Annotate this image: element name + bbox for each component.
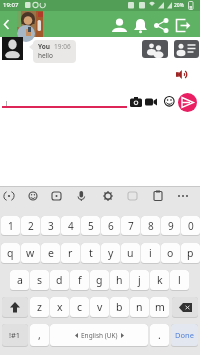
button[interactable]: y bbox=[101, 243, 120, 264]
button[interactable] bbox=[2, 297, 28, 318]
button[interactable] bbox=[174, 40, 199, 58]
button[interactable] bbox=[3, 19, 11, 30]
button[interactable]: a bbox=[10, 270, 29, 291]
staticText: m bbox=[155, 300, 165, 314]
button[interactable] bbox=[178, 93, 197, 112]
button[interactable]: 2 bbox=[21, 216, 40, 236]
staticText: k bbox=[157, 273, 163, 287]
button[interactable]: 5 bbox=[81, 216, 100, 236]
staticText: q bbox=[7, 246, 14, 260]
button[interactable] bbox=[130, 97, 142, 107]
staticText: x bbox=[57, 300, 63, 314]
staticText: 6 bbox=[108, 219, 114, 233]
button[interactable] bbox=[145, 98, 157, 106]
button[interactable]: n bbox=[130, 297, 149, 318]
button[interactable]: m bbox=[150, 297, 169, 318]
staticText: . bbox=[158, 328, 161, 342]
staticText: n bbox=[136, 300, 143, 314]
button[interactable]: t bbox=[81, 243, 100, 264]
staticText: g bbox=[96, 273, 103, 287]
staticText: 8 bbox=[148, 219, 154, 233]
staticText: hello bbox=[38, 51, 53, 60]
staticText: 1 bbox=[8, 219, 14, 233]
button[interactable]: k bbox=[150, 270, 169, 291]
button[interactable] bbox=[108, 18, 130, 35]
staticText: 5 bbox=[88, 219, 94, 233]
button[interactable]: 6 bbox=[101, 216, 120, 236]
button[interactable]: . bbox=[150, 324, 169, 347]
button[interactable]: g bbox=[90, 270, 109, 291]
staticText: h bbox=[116, 273, 123, 287]
button[interactable]: s bbox=[30, 270, 49, 291]
button[interactable]: 8 bbox=[141, 216, 160, 236]
button[interactable]: , bbox=[30, 324, 49, 347]
button[interactable]: You bbox=[33, 40, 76, 63]
button[interactable]: w bbox=[21, 243, 40, 264]
button[interactable]: b bbox=[110, 297, 129, 318]
button[interactable]: 7 bbox=[121, 216, 140, 236]
staticText: d bbox=[56, 273, 63, 287]
button[interactable]: !#1 bbox=[2, 324, 28, 347]
button[interactable] bbox=[17, 11, 43, 37]
button[interactable] bbox=[151, 18, 172, 35]
button[interactable] bbox=[164, 96, 175, 107]
button[interactable]: q bbox=[1, 243, 20, 264]
button[interactable]: z bbox=[30, 297, 49, 318]
staticText: j bbox=[138, 273, 141, 287]
button[interactable]: f bbox=[70, 270, 89, 291]
staticText: i bbox=[149, 246, 152, 260]
button[interactable]: h bbox=[110, 270, 129, 291]
staticText: o bbox=[167, 246, 174, 260]
staticText: 3 bbox=[48, 219, 54, 233]
button[interactable]: x bbox=[50, 297, 69, 318]
button[interactable]: p bbox=[181, 243, 200, 264]
button[interactable]: u bbox=[121, 243, 140, 264]
button[interactable] bbox=[172, 18, 196, 35]
staticText: z bbox=[37, 300, 42, 314]
button[interactable] bbox=[176, 69, 188, 80]
button[interactable]: e bbox=[41, 243, 60, 264]
staticText: p bbox=[187, 246, 194, 260]
button[interactable] bbox=[2, 37, 23, 60]
button[interactable]: l bbox=[170, 270, 189, 291]
staticText: 4 bbox=[68, 219, 74, 233]
button[interactable]: English (UK) bbox=[50, 324, 148, 347]
staticText: c bbox=[77, 300, 83, 314]
button[interactable]: Done bbox=[171, 324, 198, 347]
staticText: u bbox=[127, 246, 134, 260]
button[interactable]: c bbox=[70, 297, 89, 318]
staticText: b bbox=[116, 300, 123, 314]
staticText: 9 bbox=[168, 219, 174, 233]
button[interactable]: 1 bbox=[1, 216, 20, 236]
staticText: w bbox=[26, 246, 35, 260]
button[interactable]: d bbox=[50, 270, 69, 291]
button[interactable]: j bbox=[130, 270, 149, 291]
button[interactable]: 4 bbox=[61, 216, 80, 236]
button[interactable]: v bbox=[90, 297, 109, 318]
staticText: e bbox=[48, 246, 54, 260]
staticText: !#1 bbox=[9, 330, 21, 340]
button[interactable] bbox=[172, 297, 198, 318]
button[interactable] bbox=[142, 40, 168, 58]
staticText: Done bbox=[175, 330, 194, 340]
staticText: 20% bbox=[174, 2, 184, 9]
staticText: 19:07 bbox=[3, 1, 19, 9]
button[interactable]: 3 bbox=[41, 216, 60, 236]
button[interactable]: 0 bbox=[181, 216, 200, 236]
button[interactable]: 9 bbox=[161, 216, 180, 236]
staticText: 2 bbox=[28, 219, 34, 233]
staticText: English (UK) bbox=[81, 331, 118, 340]
button[interactable]: o bbox=[161, 243, 180, 264]
staticText: 19:06 bbox=[54, 42, 71, 51]
staticText: y bbox=[108, 246, 114, 260]
staticText: l bbox=[178, 273, 181, 287]
staticText: v bbox=[97, 300, 103, 314]
staticText: 0 bbox=[188, 219, 194, 233]
button[interactable] bbox=[130, 18, 151, 35]
button[interactable]: i bbox=[141, 243, 160, 264]
staticText: You bbox=[38, 42, 51, 51]
staticText: , bbox=[38, 328, 41, 342]
staticText: t bbox=[89, 246, 93, 260]
button[interactable]: r bbox=[61, 243, 80, 264]
staticText: 7 bbox=[128, 219, 134, 233]
